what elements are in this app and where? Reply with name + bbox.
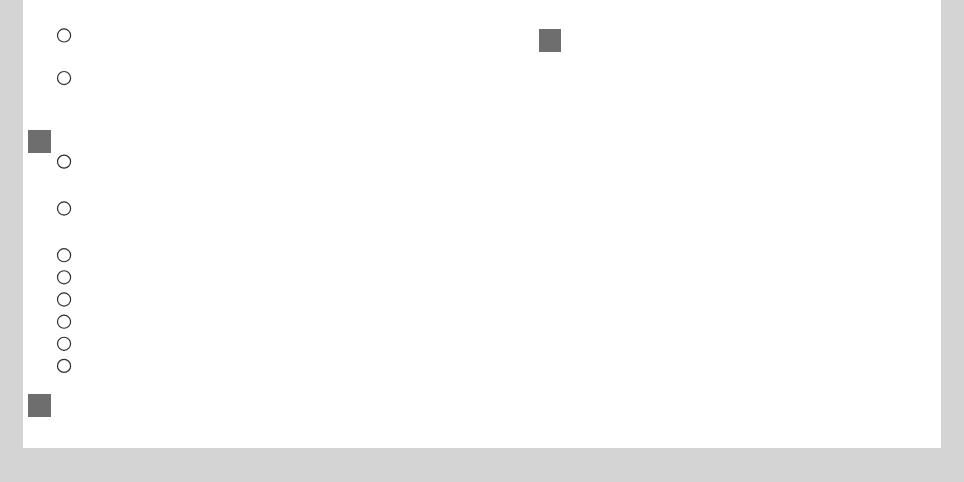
button[interactable]: Item 4	[23, 311, 941, 333]
button[interactable]: Item 5	[23, 333, 941, 355]
button[interactable]: Option 1	[23, 14, 941, 57]
button[interactable]: Item 1	[23, 244, 941, 266]
button[interactable]: Option 3	[23, 138, 941, 185]
button[interactable]: Item 6	[23, 355, 941, 377]
button[interactable]: Item 2	[23, 266, 941, 288]
button[interactable]: Option 2	[23, 57, 941, 100]
button[interactable]: Item 3	[23, 288, 941, 311]
button[interactable]: Option 4	[23, 185, 941, 232]
